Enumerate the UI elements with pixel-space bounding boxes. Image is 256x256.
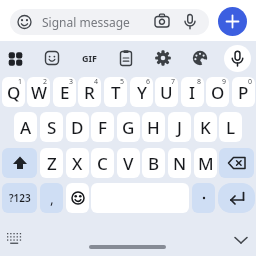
- staticText: V: [123, 152, 134, 175]
- staticText: 8: [197, 77, 202, 87]
- button[interactable]: O: [206, 77, 229, 107]
- button[interactable]: I: [181, 77, 204, 107]
- staticText: U: [160, 81, 173, 104]
- staticText: L: [226, 116, 236, 139]
- button[interactable]: [3, 46, 27, 70]
- button[interactable]: Y: [130, 77, 153, 107]
- staticText: K: [200, 116, 211, 139]
- button[interactable]: D: [66, 112, 89, 142]
- button[interactable]: X: [66, 148, 89, 178]
- staticText: Z: [47, 152, 57, 175]
- staticText: 7: [171, 77, 176, 87]
- button[interactable]: [10, 9, 209, 35]
- staticText: F: [98, 116, 107, 139]
- button[interactable]: M: [194, 148, 217, 178]
- staticText: 3: [69, 77, 74, 87]
- button[interactable]: E: [53, 77, 76, 107]
- button[interactable]: N: [168, 148, 191, 178]
- staticText: J: [177, 116, 182, 139]
- staticText: 9: [222, 77, 227, 87]
- button[interactable]: R: [78, 77, 101, 107]
- button[interactable]: ?123: [2, 183, 37, 213]
- staticText: ,: [50, 189, 54, 208]
- staticText: 6: [146, 77, 151, 87]
- button[interactable]: [151, 46, 175, 70]
- staticText: D: [71, 116, 84, 139]
- button[interactable]: H: [142, 112, 165, 142]
- staticText: I: [189, 81, 196, 104]
- button[interactable]: W: [27, 77, 50, 107]
- button[interactable]: U: [155, 77, 178, 107]
- button[interactable]: [114, 46, 138, 70]
- staticText: N: [173, 152, 187, 175]
- button[interactable]: [224, 45, 251, 72]
- staticText: Signal message: [42, 14, 130, 30]
- staticText: X: [72, 152, 83, 175]
- button[interactable]: [2, 148, 37, 178]
- button[interactable]: [40, 46, 64, 70]
- staticText: C: [97, 152, 108, 175]
- button[interactable]: ,: [40, 183, 63, 213]
- staticText: Q: [7, 81, 21, 104]
- button[interactable]: A: [14, 112, 37, 142]
- staticText: S: [47, 116, 57, 139]
- button[interactable]: [219, 148, 254, 178]
- staticText: Y: [137, 81, 147, 104]
- button[interactable]: [218, 183, 255, 213]
- staticText: 0: [248, 77, 253, 87]
- button[interactable]: [66, 183, 89, 213]
- button[interactable]: P: [232, 77, 255, 107]
- staticText: R: [84, 81, 95, 104]
- button[interactable]: F: [91, 112, 114, 142]
- button[interactable]: L: [219, 112, 242, 142]
- staticText: G: [122, 116, 135, 139]
- button[interactable]: V: [117, 148, 140, 178]
- staticText: W: [31, 81, 47, 104]
- staticText: A: [20, 116, 32, 139]
- button[interactable]: B: [142, 148, 165, 178]
- button[interactable]: [188, 46, 212, 70]
- staticText: 1: [18, 77, 23, 87]
- button[interactable]: [4, 228, 24, 248]
- staticText: 5: [120, 77, 125, 87]
- button[interactable]: K: [194, 112, 217, 142]
- button[interactable]: GIF: [77, 46, 101, 70]
- button[interactable]: S: [40, 112, 63, 142]
- button[interactable]: [231, 230, 251, 250]
- staticText: O: [211, 81, 225, 104]
- button[interactable]: Q: [2, 77, 25, 107]
- button[interactable]: [192, 183, 215, 213]
- button[interactable]: G: [117, 112, 140, 142]
- staticText: 4: [94, 77, 99, 87]
- staticText: H: [147, 116, 160, 139]
- staticText: B: [148, 152, 160, 175]
- button[interactable]: [218, 7, 247, 36]
- staticText: P: [238, 81, 249, 104]
- staticText: E: [60, 81, 70, 104]
- button[interactable]: C: [91, 148, 114, 178]
- button[interactable]: J: [168, 112, 191, 142]
- staticText: ?123: [9, 191, 31, 205]
- staticText: T: [111, 81, 121, 104]
- staticText: GIF: [82, 52, 97, 64]
- staticText: 2: [43, 77, 48, 87]
- button[interactable]: T: [104, 77, 127, 107]
- staticText: M: [198, 152, 214, 175]
- button[interactable]: Z: [40, 148, 63, 178]
